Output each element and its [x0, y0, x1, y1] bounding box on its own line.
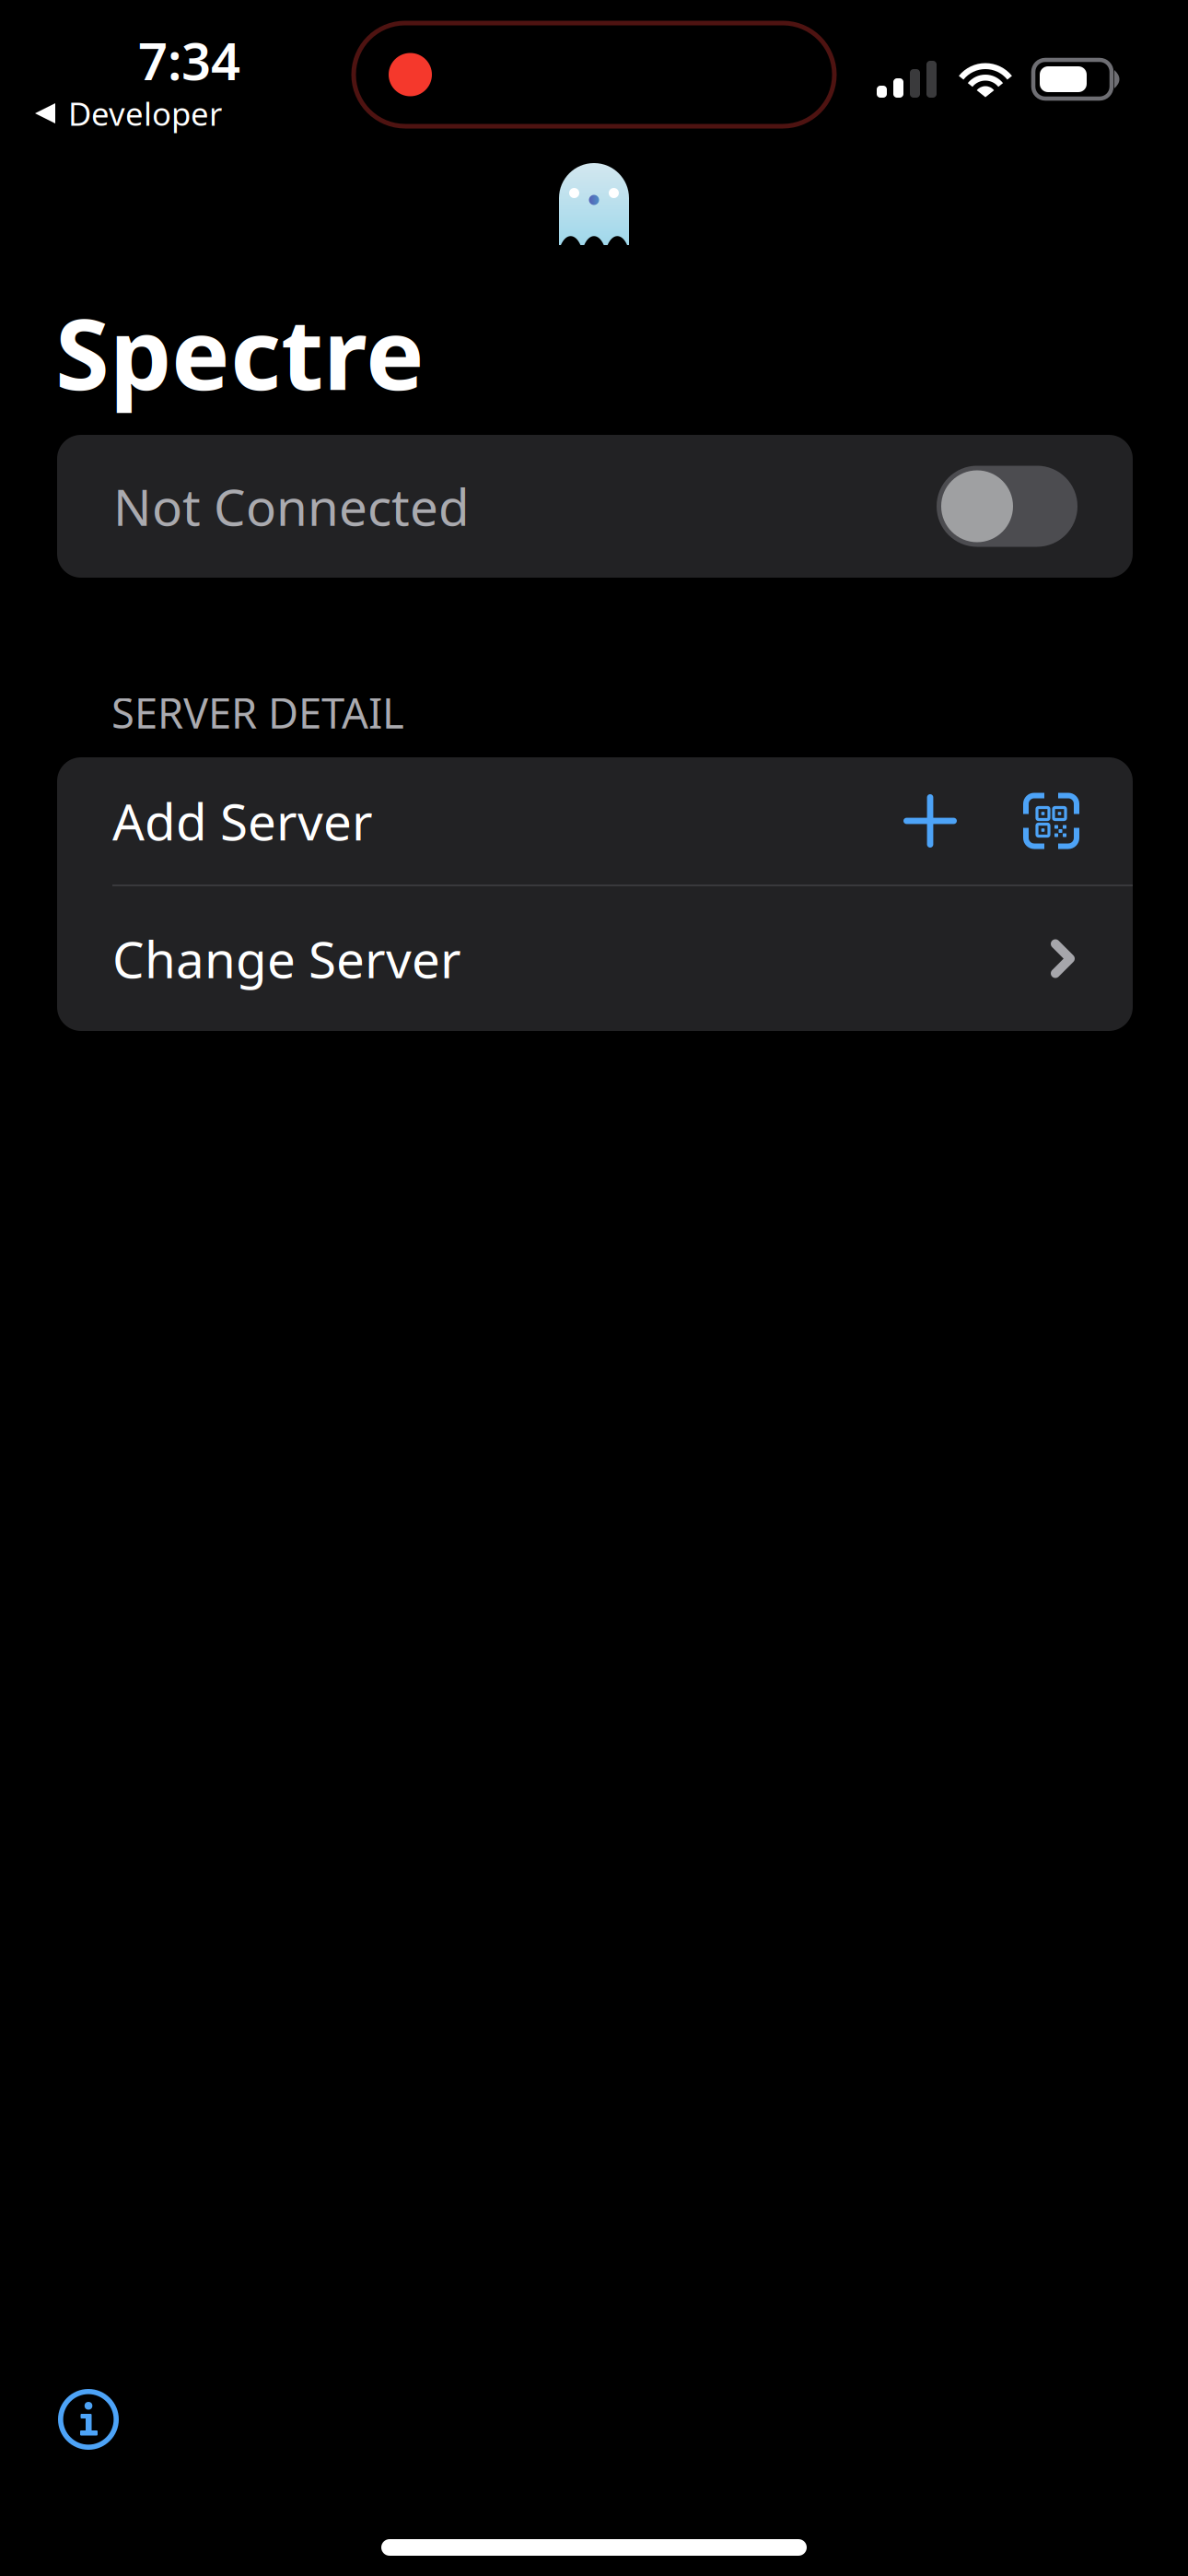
staticText: Developer [68, 92, 222, 135]
button[interactable]: Add server [898, 789, 962, 853]
button[interactable]: Change Server [57, 886, 1133, 1031]
staticText: Not Connected [113, 473, 470, 540]
staticText: Spectre [55, 287, 425, 417]
staticText: Change Server [112, 925, 461, 992]
staticText: SERVER DETAIL [111, 685, 404, 740]
button[interactable]: Scan QR code [1023, 793, 1079, 849]
staticText: Add Server [112, 787, 373, 854]
button[interactable]: Not Connected [57, 435, 1133, 578]
staticText: 7:34 [138, 26, 240, 94]
button[interactable]: About Spectre [58, 2389, 119, 2450]
